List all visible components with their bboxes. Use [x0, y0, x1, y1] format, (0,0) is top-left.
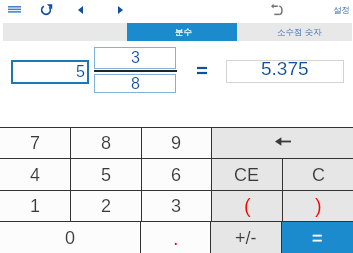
- button[interactable]: 5: [71, 159, 141, 190]
- button[interactable]: 4: [0, 159, 70, 190]
- staticText: (: [244, 195, 251, 217]
- staticText: 소수점 숫자: [277, 27, 322, 38]
- button[interactable]: 설정: [326, 0, 353, 20]
- staticText: 8: [131, 75, 140, 93]
- staticText: 7: [30, 133, 41, 153]
- staticText: 6: [171, 165, 182, 185]
- button[interactable]: 8: [94, 74, 176, 93]
- staticText: 설정: [333, 5, 350, 16]
- staticText: C: [312, 165, 325, 185]
- staticText: 1: [30, 196, 41, 216]
- button[interactable]: 9: [142, 128, 211, 158]
- staticText: 8: [101, 133, 112, 153]
- button[interactable]: +/-: [211, 222, 281, 253]
- button[interactable]: .: [141, 222, 210, 253]
- button[interactable]: 소수점 숫자: [237, 23, 352, 41]
- staticText: =: [312, 228, 323, 248]
- button[interactable]: 1: [0, 191, 70, 221]
- button[interactable]: 3: [142, 191, 211, 221]
- button[interactable]: 5: [11, 60, 89, 84]
- staticText: +/-: [235, 228, 257, 248]
- staticText: 0: [65, 228, 76, 248]
- staticText: 3: [171, 196, 182, 216]
- button[interactable]: Refresh: [35, 0, 56, 20]
- staticText: 9: [171, 133, 182, 153]
- button[interactable]: 5.375: [226, 60, 344, 83]
- staticText: 5.375: [261, 58, 309, 79]
- staticText: 5: [76, 63, 85, 81]
- button[interactable]: Back: [70, 0, 91, 20]
- button[interactable]: Undo: [266, 0, 287, 20]
- button[interactable]: 7: [0, 128, 70, 158]
- button[interactable]: CE: [212, 159, 282, 190]
- button[interactable]: 6: [142, 159, 211, 190]
- button[interactable]: 3: [94, 47, 176, 69]
- button[interactable]: Backspace: [212, 128, 353, 158]
- staticText: 2: [101, 196, 112, 216]
- staticText: 4: [30, 165, 41, 185]
- button[interactable]: C: [283, 159, 353, 190]
- staticText: .: [173, 227, 179, 249]
- button[interactable]: Forward: [110, 0, 131, 20]
- staticText: 분수: [175, 27, 192, 38]
- staticText: CE: [234, 165, 260, 185]
- staticText: ): [315, 195, 322, 217]
- button[interactable]: 분수: [127, 23, 237, 41]
- button[interactable]: ): [283, 191, 353, 221]
- staticText: 3: [131, 49, 140, 67]
- button[interactable]: Menu: [4, 0, 25, 18]
- button[interactable]: =: [282, 222, 353, 253]
- button[interactable]: 0: [0, 222, 140, 253]
- button[interactable]: (: [212, 191, 282, 221]
- button[interactable]: 2: [71, 191, 141, 221]
- staticText: 5: [101, 165, 112, 185]
- button[interactable]: 8: [71, 128, 141, 158]
